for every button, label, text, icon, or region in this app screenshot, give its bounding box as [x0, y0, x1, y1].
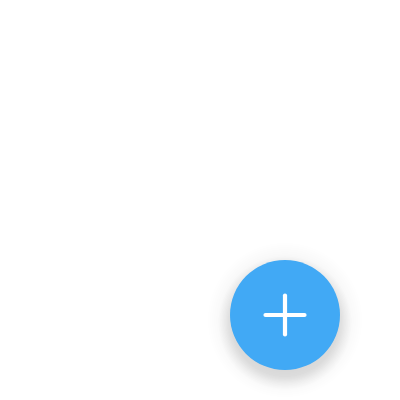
button[interactable]: Add: [230, 260, 340, 370]
